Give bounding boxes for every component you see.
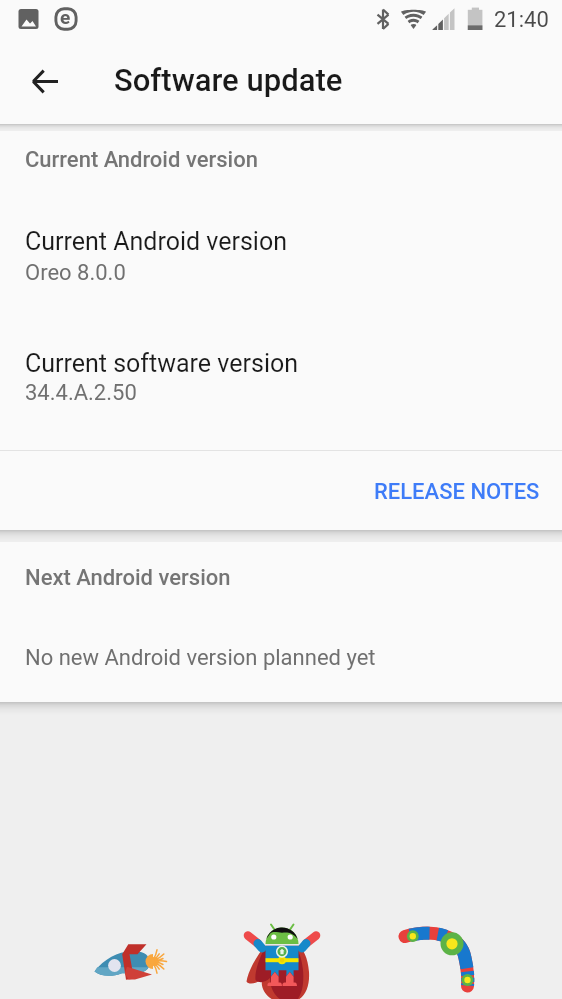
button[interactable]: Current software version — [0, 333, 562, 450]
staticText: e — [60, 6, 71, 28]
staticText: Current Android version — [25, 147, 258, 173]
button[interactable]: Current Android version — [0, 211, 562, 333]
staticText: 21:40 — [494, 7, 549, 33]
staticText: Current software version — [25, 349, 299, 378]
staticText: Oreo 8.0.0 — [25, 260, 126, 286]
staticText: Next Android version — [25, 565, 231, 591]
button[interactable]: Navigate up — [16, 53, 72, 109]
staticText: RELEASE NOTES — [374, 479, 540, 505]
staticText: Software update — [114, 62, 343, 98]
button[interactable]: RELEASE NOTES — [358, 469, 556, 515]
staticText: No new Android version planned yet — [25, 645, 376, 671]
staticText: Current Android version — [25, 227, 288, 256]
staticText: 34.4.A.2.50 — [25, 380, 137, 406]
